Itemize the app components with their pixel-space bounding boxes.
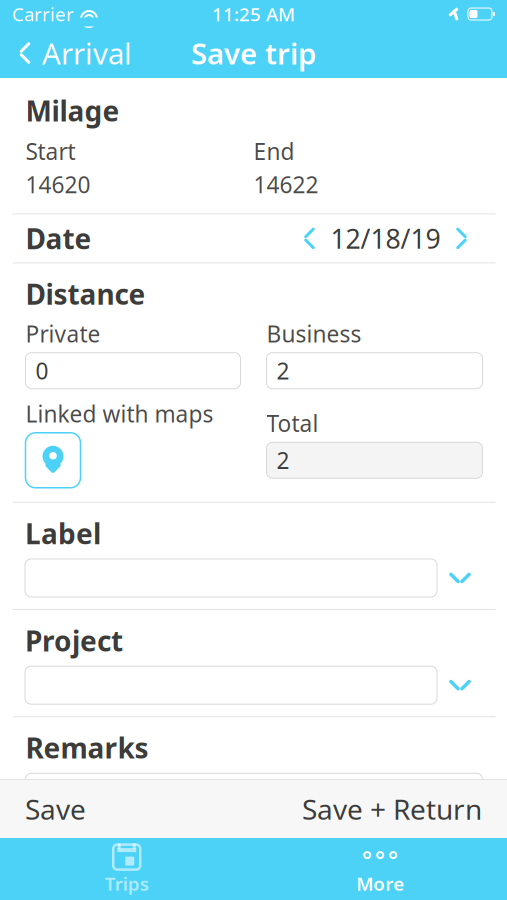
- staticText: Label: [25, 515, 101, 552]
- staticText: Distance: [25, 275, 145, 313]
- staticText: Private: [25, 319, 100, 349]
- staticText: Linked with maps: [25, 399, 213, 429]
- staticText: 0: [35, 356, 48, 386]
- button[interactable]: Arrival: [0, 25, 142, 80]
- staticText: Business: [266, 319, 361, 349]
- staticText: Milage: [25, 92, 119, 129]
- button[interactable]: Next day: [440, 221, 482, 255]
- button[interactable]: Previous day: [288, 221, 330, 255]
- button[interactable]: Trips: [0, 834, 253, 900]
- staticText: 11:25 AM: [212, 2, 295, 26]
- staticText: Total: [266, 408, 318, 438]
- staticText: End: [253, 136, 294, 166]
- staticText: 14620: [25, 169, 90, 199]
- staticText: Start: [25, 136, 75, 166]
- button[interactable]: Linked with maps: [25, 433, 80, 488]
- staticText: 2: [276, 445, 289, 475]
- staticText: Trips: [105, 871, 149, 896]
- button[interactable]: [25, 559, 483, 597]
- staticText: Save: [25, 790, 86, 828]
- button[interactable]: [25, 666, 483, 704]
- staticText: Date: [25, 220, 91, 257]
- staticText: Save + Return: [302, 790, 482, 828]
- staticText: Carrier: [12, 2, 74, 26]
- staticText: 2: [276, 356, 289, 386]
- button[interactable]: More: [253, 834, 507, 900]
- staticText: Save trip: [191, 33, 316, 72]
- staticText: 14622: [253, 169, 318, 199]
- staticText: More: [356, 871, 404, 896]
- staticText: Remarks: [25, 729, 148, 766]
- button[interactable]: Save + Return: [277, 776, 507, 842]
- staticText: 12/18/19: [330, 221, 440, 256]
- staticText: Project: [25, 622, 123, 659]
- button[interactable]: Save: [0, 776, 111, 842]
- staticText: Arrival: [42, 33, 132, 72]
